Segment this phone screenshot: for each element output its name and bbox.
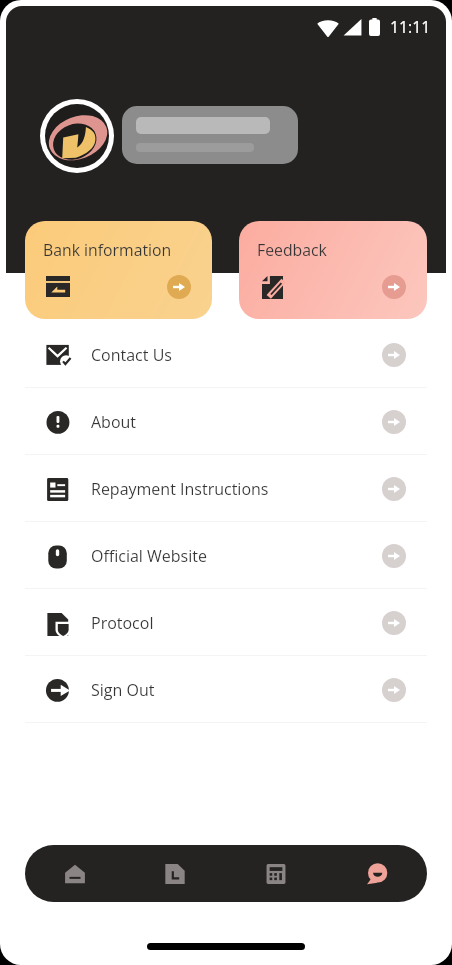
staticText: Sign Out [91, 679, 155, 701]
button[interactable]: Bank information [25, 221, 212, 319]
staticText: 11:11 [390, 16, 431, 38]
button[interactable]: Pending [125, 845, 225, 902]
staticText: Repayment Instructions [91, 478, 269, 500]
staticText: Contact Us [91, 344, 172, 366]
button[interactable]: Sign Out [0, 656, 452, 723]
staticText: About [91, 411, 137, 433]
staticText: Bank information [43, 239, 172, 261]
other: Open Feedback [382, 275, 406, 299]
button[interactable]: Home [25, 845, 125, 902]
other: Open Bank information [167, 275, 191, 299]
staticText: Protocol [91, 612, 154, 634]
button[interactable]: Official Website [0, 522, 452, 589]
button[interactable]: Contact Us [0, 321, 452, 388]
button[interactable]: About [0, 388, 452, 455]
button[interactable]: Feedback [239, 221, 427, 319]
button[interactable]: Profile picture [45, 104, 109, 168]
button[interactable]: Calculator [225, 845, 326, 902]
button[interactable]: Protocol [0, 589, 452, 656]
button[interactable]: Chat [326, 845, 427, 902]
staticText: Feedback [257, 239, 327, 261]
staticText: Official Website [91, 545, 207, 567]
button[interactable]: Repayment Instructions [0, 455, 452, 522]
